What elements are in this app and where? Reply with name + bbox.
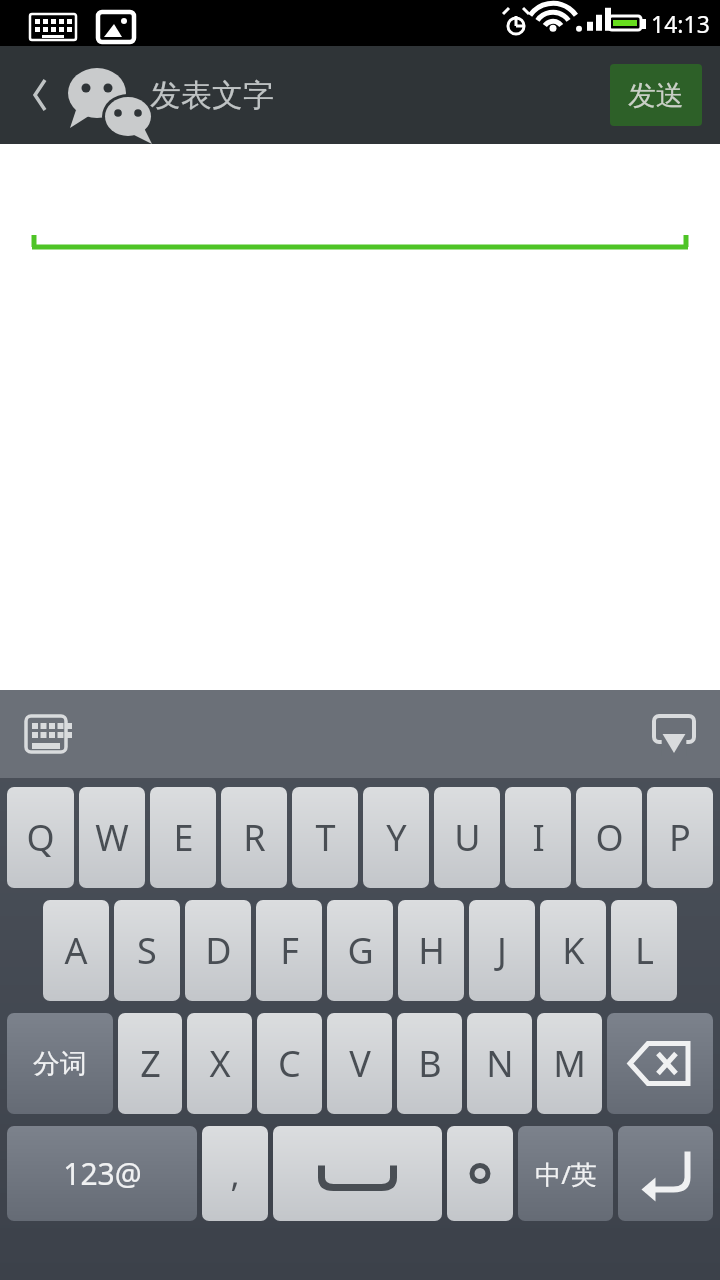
- staticText: O: [595, 813, 624, 862]
- staticText: R: [243, 813, 266, 862]
- staticText: T: [315, 813, 336, 862]
- button[interactable]: L: [611, 900, 677, 1001]
- button[interactable]: C: [257, 1013, 322, 1114]
- button[interactable]: O: [576, 787, 642, 888]
- staticText: 发送: [628, 78, 684, 113]
- button[interactable]: P: [647, 787, 713, 888]
- staticText: I: [532, 813, 545, 862]
- button[interactable]: B: [397, 1013, 462, 1114]
- staticText: B: [418, 1039, 442, 1088]
- button[interactable]: back: [607, 1013, 713, 1114]
- staticText: Y: [386, 813, 407, 862]
- staticText: X: [209, 1039, 231, 1088]
- staticText: 分词: [33, 1047, 87, 1081]
- staticText: D: [205, 926, 232, 975]
- staticText: Q: [26, 813, 55, 862]
- staticText: 发表文字: [150, 76, 274, 115]
- staticText: M: [553, 1039, 586, 1088]
- button[interactable]: 123@: [7, 1126, 197, 1221]
- button[interactable]: 中/英: [518, 1126, 613, 1221]
- button[interactable]: W: [79, 787, 145, 888]
- button[interactable]: N: [467, 1013, 532, 1114]
- staticText: C: [278, 1039, 301, 1088]
- button[interactable]: A: [43, 900, 109, 1001]
- button[interactable]: G: [327, 900, 393, 1001]
- button[interactable]: Z: [118, 1013, 182, 1114]
- button[interactable]: enter: [618, 1126, 713, 1221]
- button[interactable]: K: [540, 900, 606, 1001]
- staticText: 中/英: [535, 1156, 597, 1192]
- staticText: E: [173, 813, 194, 862]
- staticText: Z: [140, 1039, 161, 1088]
- button[interactable]: U: [434, 787, 500, 888]
- staticText: F: [280, 926, 299, 975]
- button[interactable]: ,: [202, 1126, 268, 1221]
- staticText: P: [669, 813, 691, 862]
- staticText: N: [486, 1039, 514, 1088]
- button[interactable]: T: [292, 787, 358, 888]
- staticText: U: [454, 813, 481, 862]
- button[interactable]: D: [185, 900, 251, 1001]
- staticText: 14:13: [651, 8, 710, 39]
- button[interactable]: Hide keyboard: [646, 706, 702, 762]
- button[interactable]: V: [327, 1013, 392, 1114]
- button[interactable]: E: [150, 787, 216, 888]
- button[interactable]: 分词: [7, 1013, 113, 1114]
- staticText: 123@: [63, 1153, 142, 1194]
- staticText: ,: [230, 1151, 240, 1197]
- button[interactable]: S: [114, 900, 180, 1001]
- button[interactable]: Keyboard layout: [18, 706, 74, 762]
- button[interactable]: J: [469, 900, 535, 1001]
- button[interactable]: Y: [363, 787, 429, 888]
- button[interactable]: Q: [7, 787, 74, 888]
- staticText: K: [562, 926, 585, 975]
- staticText: G: [347, 926, 374, 975]
- button[interactable]: H: [398, 900, 464, 1001]
- staticText: L: [635, 926, 654, 975]
- staticText: A: [64, 926, 88, 975]
- button[interactable]: Back: [14, 60, 66, 130]
- staticText: J: [497, 926, 507, 975]
- button[interactable]: dot: [447, 1126, 513, 1221]
- staticText: H: [418, 926, 445, 975]
- button[interactable]: R: [221, 787, 287, 888]
- staticText: W: [95, 813, 129, 862]
- button[interactable]: 发送: [610, 64, 702, 126]
- staticText: S: [137, 926, 157, 975]
- staticText: V: [349, 1039, 371, 1088]
- button[interactable]: M: [537, 1013, 602, 1114]
- button[interactable]: F: [256, 900, 322, 1001]
- button[interactable]: X: [187, 1013, 252, 1114]
- button[interactable]: space: [273, 1126, 442, 1221]
- button[interactable]: I: [505, 787, 571, 888]
